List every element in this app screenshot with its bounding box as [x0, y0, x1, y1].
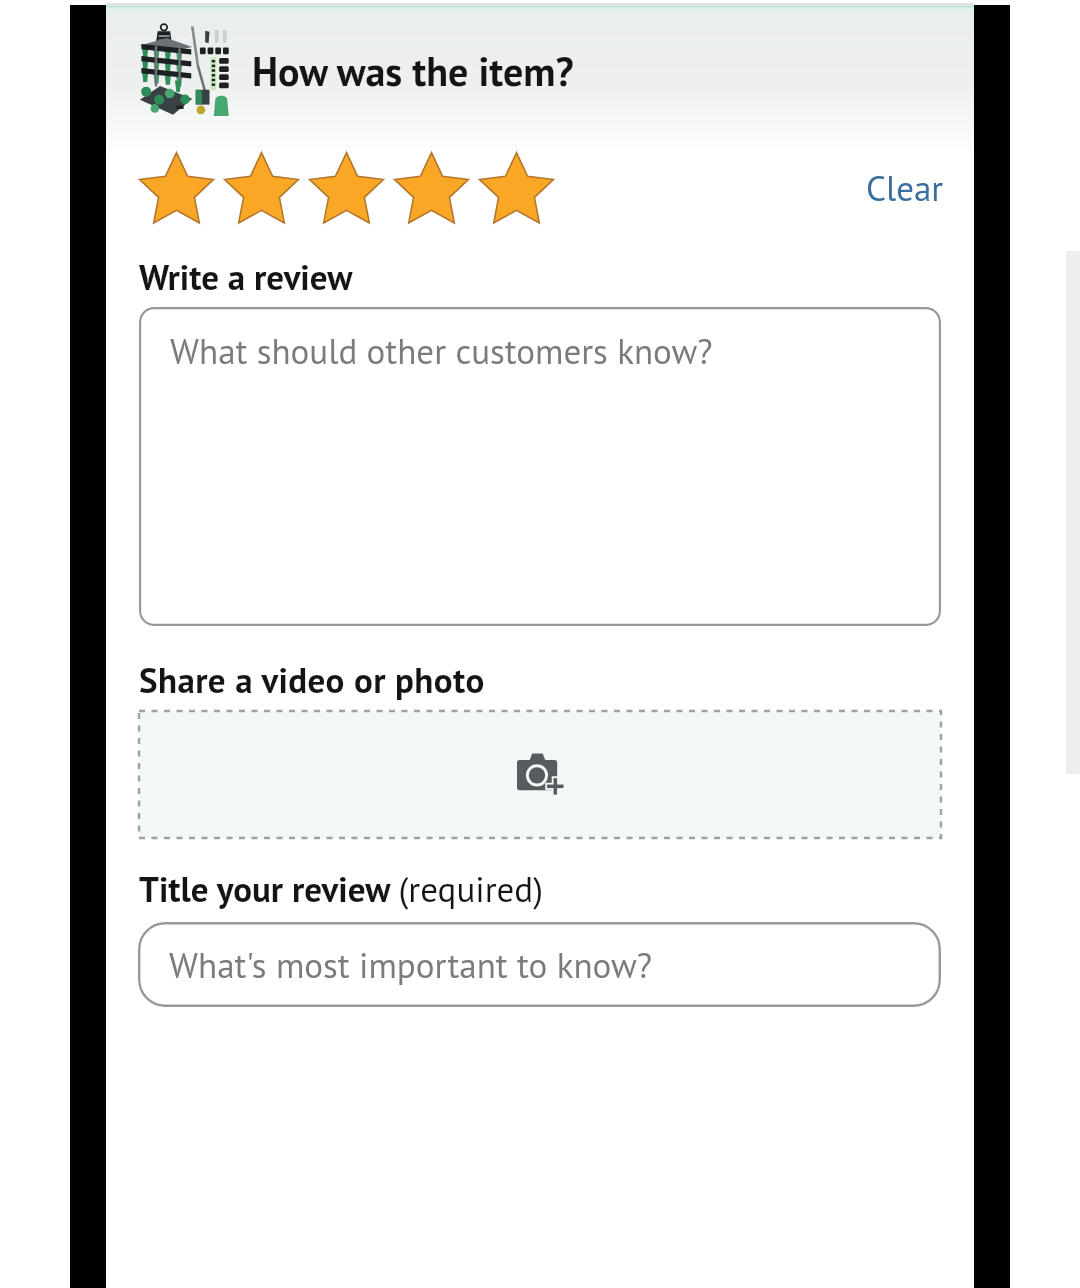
- staticText: What should other customers know?: [170, 328, 713, 373]
- button[interactable]: Rate 2 stars: [219, 140, 304, 225]
- button[interactable]: Clear: [836, 153, 950, 219]
- button[interactable]: What's most important to know?: [138, 922, 941, 1007]
- button[interactable]: Rate 1 stars: [134, 140, 219, 225]
- staticText: How was the item?: [252, 45, 574, 97]
- button[interactable]: What should other customers know?: [139, 307, 941, 626]
- staticText: Write a review: [139, 254, 353, 299]
- button[interactable]: Add a video or photo: [139, 711, 941, 838]
- button[interactable]: Rate 4 stars: [389, 140, 474, 225]
- button[interactable]: Rate 5 stars: [474, 140, 559, 225]
- staticText: What's most important to know?: [169, 942, 652, 987]
- staticText: Clear: [866, 165, 944, 210]
- staticText: Title your review (required): [139, 866, 543, 911]
- staticText: Share a video or photo: [139, 657, 485, 702]
- button[interactable]: Rate 3 stars: [304, 140, 389, 225]
